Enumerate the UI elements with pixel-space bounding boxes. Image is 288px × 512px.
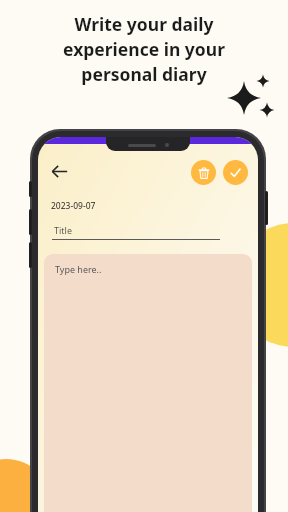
- button[interactable]: Type here..: [44, 254, 252, 512]
- staticText: 2023-09-07: [51, 200, 96, 212]
- staticText: Write your daily experience in your pers…: [63, 12, 225, 86]
- button[interactable]: Save: [223, 160, 248, 185]
- staticText: Type here..: [55, 263, 102, 275]
- staticText: Title: [54, 224, 72, 236]
- button[interactable]: Title: [52, 224, 220, 240]
- button[interactable]: Back: [46, 158, 72, 184]
- button[interactable]: Delete: [191, 160, 216, 185]
